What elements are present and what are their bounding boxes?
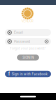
staticText: Sign in with Facebook (12, 72, 48, 76)
staticText: Email (14, 30, 23, 34)
staticText: Password (14, 39, 30, 43)
staticText: Forgot your password? (10, 47, 46, 50)
button[interactable]: Email (5, 29, 51, 36)
button[interactable]: SIGN IN (17, 54, 39, 60)
button[interactable]: Forgot your password? (10, 47, 46, 50)
button[interactable]: Password (5, 38, 51, 45)
staticText: VENDOR (21, 19, 33, 23)
button[interactable]: f (5, 71, 51, 77)
staticText: f (8, 72, 10, 76)
staticText: SIGN IN (22, 56, 33, 59)
